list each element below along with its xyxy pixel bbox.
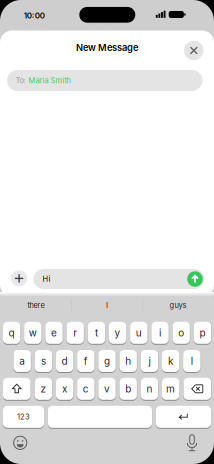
button[interactable] [187,271,203,287]
staticText: To: [15,76,25,85]
button[interactable]: a [13,350,31,372]
button[interactable] [156,406,211,428]
staticText: u [136,327,142,339]
staticText: b [125,383,131,395]
button[interactable]: m [162,378,179,400]
staticText: i [159,327,161,339]
staticText: h [125,355,131,367]
button[interactable]: h [119,350,137,372]
button[interactable]: r [66,322,84,344]
staticText: I [106,301,108,310]
button[interactable]: I [77,296,137,314]
button[interactable]: j [141,350,158,372]
button[interactable]: v [98,378,116,400]
staticText: a [19,355,25,367]
button[interactable]: b [119,378,137,400]
staticText: n [146,383,152,395]
button[interactable] [48,406,152,428]
button[interactable]: t [88,322,105,344]
button[interactable]: i [151,322,169,344]
staticText: 10:00 [24,11,45,20]
staticText: t [95,327,98,339]
staticText: q [9,327,15,339]
button[interactable] [183,378,211,400]
button[interactable]: e [45,322,63,344]
button[interactable]: there [6,296,66,314]
button[interactable]: d [56,350,73,372]
button[interactable]: z [35,378,52,400]
button[interactable]: k [162,350,179,372]
button[interactable] [11,270,27,286]
staticText: w [29,327,37,339]
button[interactable] [3,378,30,400]
button[interactable]: guys [148,296,208,314]
button[interactable]: Hi [33,269,204,289]
button[interactable]: y [109,322,126,344]
button[interactable]: n [141,378,158,400]
staticText: s [41,355,46,367]
button[interactable]: f [77,350,94,372]
staticText: 123 [17,412,30,421]
staticText: there [27,301,44,310]
staticText: guys [169,301,186,310]
button[interactable]: g [98,350,116,372]
button[interactable] [184,434,200,453]
staticText: v [104,383,110,395]
staticText: d [62,355,68,367]
button[interactable]: x [56,378,73,400]
staticText: c [83,383,89,395]
button[interactable]: s [35,350,52,372]
button[interactable]: To: [7,70,202,91]
button[interactable]: u [130,322,147,344]
button[interactable] [12,435,28,451]
staticText: l [191,355,193,367]
button[interactable]: o [172,322,190,344]
staticText: y [115,327,121,339]
staticText: Hi [42,274,50,284]
staticText: f [84,355,88,367]
button[interactable]: 123 [3,406,44,428]
button[interactable]: c [77,378,94,400]
button[interactable]: q [3,322,20,344]
button[interactable]: l [183,350,200,372]
staticText: x [62,383,67,395]
staticText: p [199,327,205,339]
staticText: g [104,355,110,367]
button[interactable]: w [24,322,41,344]
staticText: o [178,327,184,339]
staticText: New Message [76,42,138,53]
staticText: m [166,383,175,395]
button[interactable]: p [194,322,211,344]
staticText: j [148,355,150,367]
staticText: Maria Smith [28,76,70,85]
button[interactable] [184,41,204,60]
staticText: z [40,383,46,395]
staticText: e [51,327,57,339]
staticText: r [73,327,77,339]
staticText: k [168,355,173,367]
